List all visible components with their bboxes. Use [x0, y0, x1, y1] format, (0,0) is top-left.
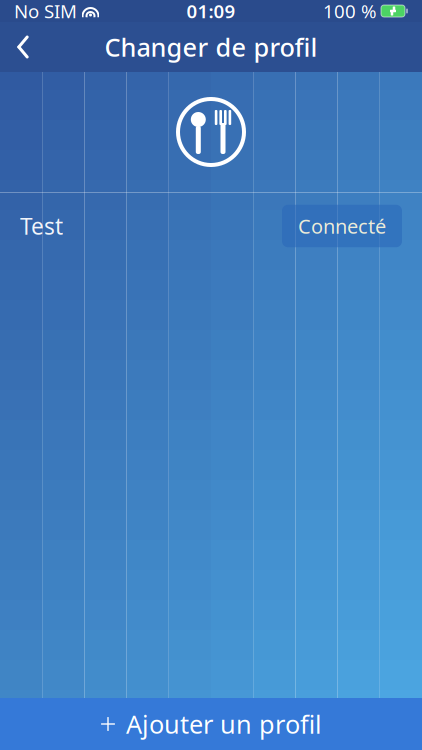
staticText: Connecté	[298, 213, 386, 239]
staticText: Ajouter un profil	[126, 707, 322, 741]
staticText: 100 %	[323, 0, 377, 23]
staticText: 01:09	[186, 0, 235, 23]
staticText: No SIM	[14, 0, 77, 23]
button[interactable]: Test	[0, 193, 422, 259]
staticText: Changer de profil	[104, 30, 317, 64]
staticText: Test	[20, 211, 63, 241]
button[interactable]: Ajouter un profil	[0, 698, 422, 750]
button[interactable]: Back	[0, 22, 46, 72]
